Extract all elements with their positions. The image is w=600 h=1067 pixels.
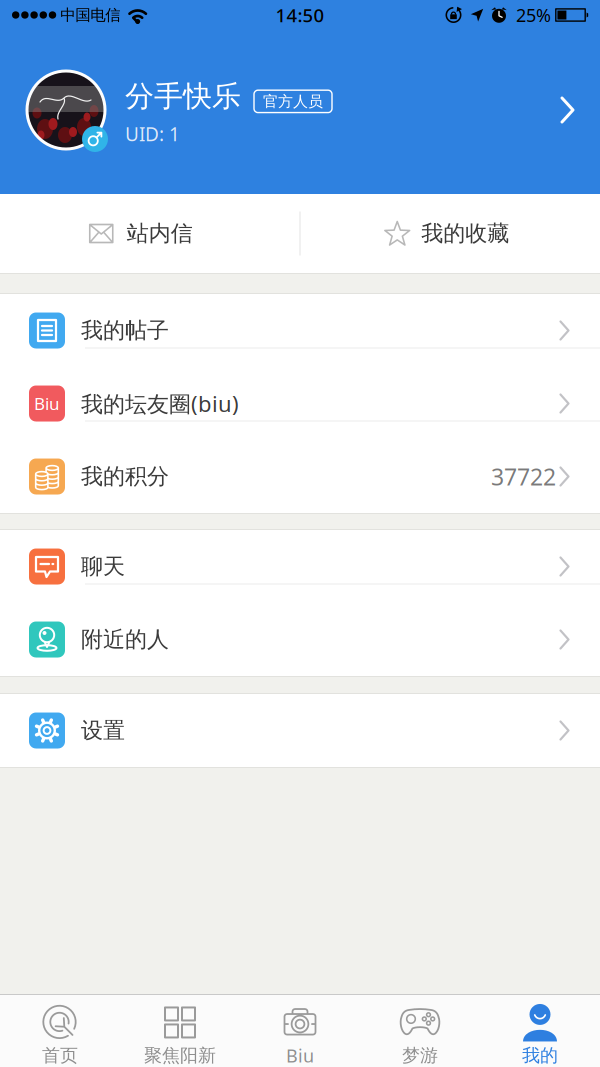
- button[interactable]: 我的积分: [0, 440, 600, 513]
- staticText: 25%: [516, 3, 551, 27]
- staticText: 我的: [522, 1044, 558, 1066]
- staticText: Biu: [34, 392, 60, 415]
- staticText: 梦游: [402, 1044, 438, 1066]
- staticText: UID: 1: [125, 121, 180, 146]
- staticText: 官方人员: [263, 92, 323, 111]
- button[interactable]: 站内信: [0, 194, 299, 273]
- staticText: 我的积分: [81, 463, 169, 490]
- button[interactable]: 聚焦阳新: [120, 995, 240, 1066]
- staticText: 设置: [81, 717, 125, 744]
- button[interactable]: 聊天: [0, 530, 600, 603]
- button[interactable]: 分手快乐: [0, 71, 600, 149]
- button[interactable]: Biu: [0, 367, 600, 440]
- button[interactable]: 首页: [0, 995, 120, 1066]
- button[interactable]: 附近的人: [0, 603, 600, 676]
- staticText: 附近的人: [81, 626, 169, 653]
- button[interactable]: 我的收藏: [300, 194, 600, 273]
- staticText: 14:50: [275, 3, 324, 27]
- button[interactable]: 设置: [0, 694, 600, 767]
- staticText: 站内信: [127, 220, 193, 247]
- button[interactable]: 我的帖子: [0, 294, 600, 367]
- button[interactable]: Biu: [240, 995, 360, 1066]
- button[interactable]: 梦游: [360, 995, 480, 1066]
- staticText: 首页: [42, 1044, 78, 1066]
- staticText: Biu: [286, 1043, 314, 1067]
- staticText: 聊天: [81, 553, 125, 580]
- staticText: 中国电信: [60, 5, 120, 24]
- button[interactable]: 我的: [480, 995, 600, 1066]
- staticText: 我的坛友圈(biu): [81, 389, 239, 418]
- staticText: 我的帖子: [81, 317, 169, 344]
- staticText: 聚焦阳新: [144, 1044, 216, 1066]
- staticText: 37722: [491, 461, 556, 492]
- staticText: 我的收藏: [421, 220, 509, 247]
- staticText: 分手快乐: [125, 79, 241, 114]
